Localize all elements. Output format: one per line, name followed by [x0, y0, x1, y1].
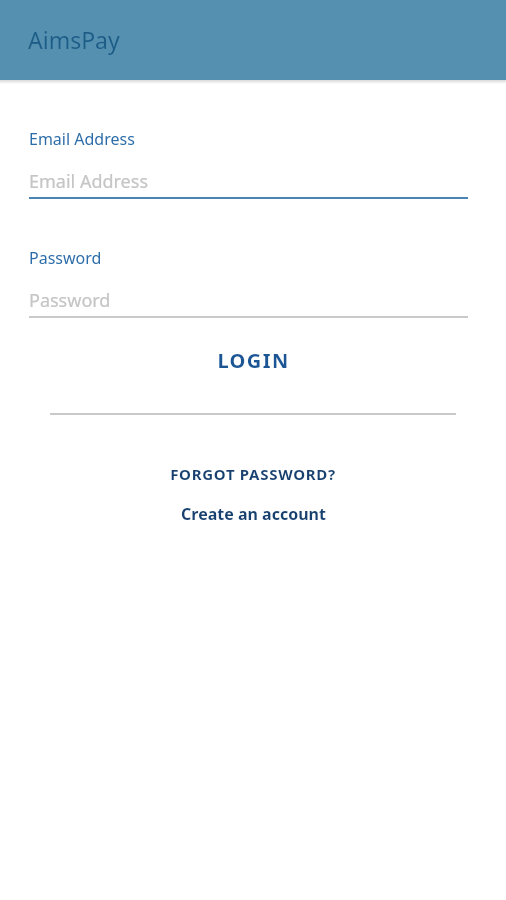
button[interactable]: Password: [0, 247, 506, 318]
staticText: Create an account: [181, 503, 326, 525]
staticText: Password: [29, 247, 102, 269]
staticText: LOGIN: [217, 347, 290, 374]
staticText: AimsPay: [28, 24, 120, 55]
staticText: Email Address: [29, 128, 135, 150]
button[interactable]: FORGOT PASSWORD?: [0, 460, 506, 488]
button[interactable]: LOGIN: [0, 339, 506, 381]
staticText: Password: [29, 288, 111, 313]
button[interactable]: Create an account: [0, 500, 506, 528]
button[interactable]: Email Address: [0, 128, 506, 199]
staticText: Email Address: [29, 169, 149, 194]
staticText: FORGOT PASSWORD?: [170, 464, 336, 484]
